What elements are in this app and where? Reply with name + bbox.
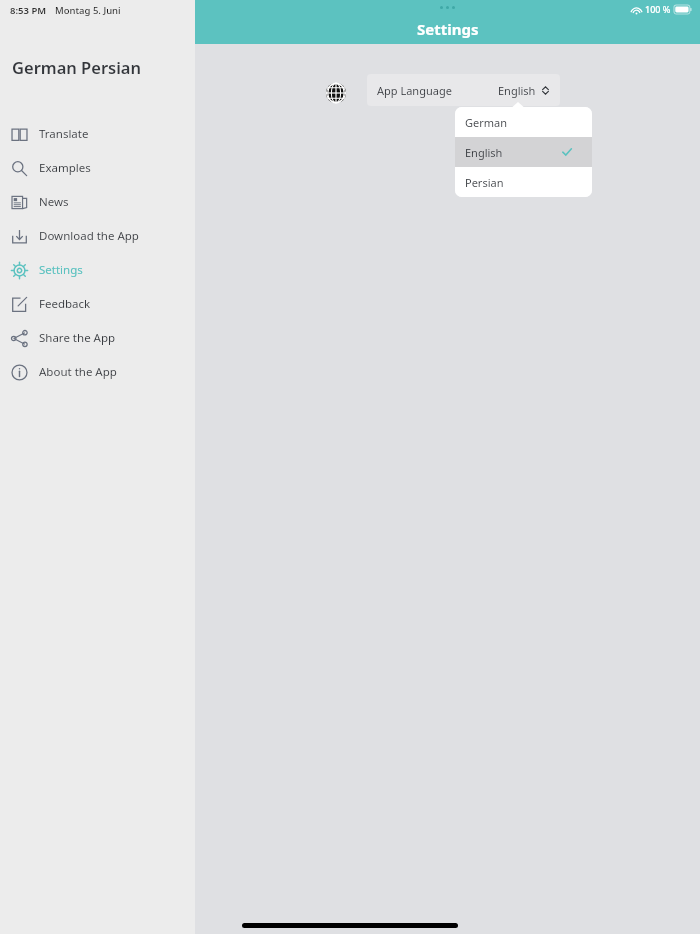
staticText: Settings — [39, 262, 83, 278]
staticText: Feedback — [39, 296, 91, 312]
staticText: 8:53 PM — [10, 4, 47, 17]
button[interactable]: English — [455, 137, 592, 167]
button[interactable]: Examples — [0, 151, 195, 185]
button[interactable]: App Language — [367, 74, 560, 106]
button[interactable]: German — [455, 107, 592, 137]
staticText: English — [465, 145, 503, 160]
button[interactable]: Settings — [0, 253, 195, 287]
staticText: Examples — [39, 160, 91, 176]
staticText: German — [465, 115, 508, 130]
staticText: About the App — [39, 364, 117, 380]
button[interactable]: Share the App — [0, 321, 195, 355]
staticText: Persian — [465, 175, 504, 190]
staticText: Settings — [417, 19, 479, 39]
button[interactable]: Download the App — [0, 219, 195, 253]
staticText: News — [39, 194, 69, 210]
staticText: App Language — [377, 83, 452, 98]
staticText: Montag 5. Juni — [55, 4, 121, 17]
staticText: English — [498, 83, 536, 98]
button[interactable]: News — [0, 185, 195, 219]
staticText: 100 % — [645, 3, 671, 15]
staticText: Translate — [39, 126, 89, 142]
button[interactable]: Feedback — [0, 287, 195, 321]
button[interactable]: Translate — [0, 117, 195, 151]
staticText: German Persian — [12, 56, 142, 78]
button[interactable]: Language — [325, 82, 347, 104]
button[interactable]: About the App — [0, 355, 195, 389]
staticText: Download the App — [39, 228, 139, 244]
button[interactable]: Persian — [455, 167, 592, 197]
staticText: Share the App — [39, 330, 116, 346]
